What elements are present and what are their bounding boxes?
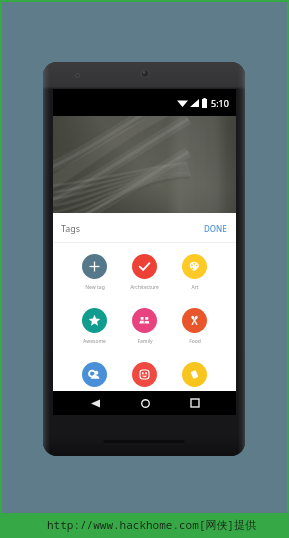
staticText: Art: [191, 284, 199, 291]
staticText: 5:10: [211, 97, 229, 109]
staticText: Awesome: [83, 338, 106, 345]
staticText: New tag: [85, 284, 105, 291]
button[interactable]: New tag: [69, 243, 119, 297]
staticText: Food: [189, 338, 201, 345]
button[interactable]: Food: [169, 297, 219, 351]
button[interactable]: Family: [119, 297, 169, 351]
staticText: http://www.hackhome.com[网侠]提供: [47, 517, 256, 532]
button[interactable]: Money: [169, 351, 219, 391]
button[interactable]: Architecture: [119, 243, 169, 297]
button[interactable]: Home: [120, 391, 170, 415]
staticText: Family: [137, 338, 153, 345]
staticText: Money: [187, 392, 203, 399]
button[interactable]: Face: [119, 351, 169, 391]
button[interactable]: Back: [70, 391, 120, 415]
button[interactable]: Recent apps: [170, 391, 220, 415]
button[interactable]: DONE: [195, 218, 236, 239]
button[interactable]: Art: [169, 243, 219, 297]
staticText: Tags: [61, 222, 81, 234]
button[interactable]: Awesome: [69, 297, 119, 351]
button[interactable]: Call: [69, 351, 119, 391]
staticText: Architecture: [130, 284, 159, 291]
staticText: DONE: [204, 223, 227, 234]
